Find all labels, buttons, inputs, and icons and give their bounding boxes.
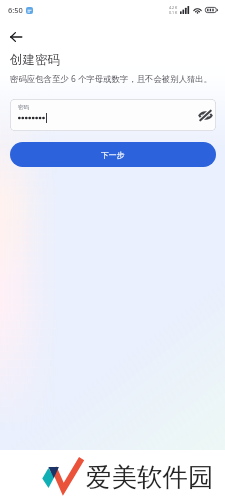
button[interactable]: Show password — [194, 104, 216, 126]
staticText: 爱美软件园 — [86, 461, 214, 493]
staticText: 下一步 — [101, 150, 125, 160]
staticText: 创建密码 — [10, 52, 60, 68]
button[interactable]: 密码 — [10, 99, 216, 131]
staticText: 4.2 K — [169, 5, 178, 10]
staticText: 密码 — [18, 104, 30, 111]
button[interactable]: Back — [4, 27, 28, 46]
staticText: 0.1 K — [169, 10, 178, 15]
button[interactable]: 下一步 — [10, 142, 216, 167]
staticText: 密码应包含至少 6 个字母或数字，且不会被别人猜出。 — [10, 73, 222, 84]
staticText: 6:50 — [8, 5, 23, 15]
